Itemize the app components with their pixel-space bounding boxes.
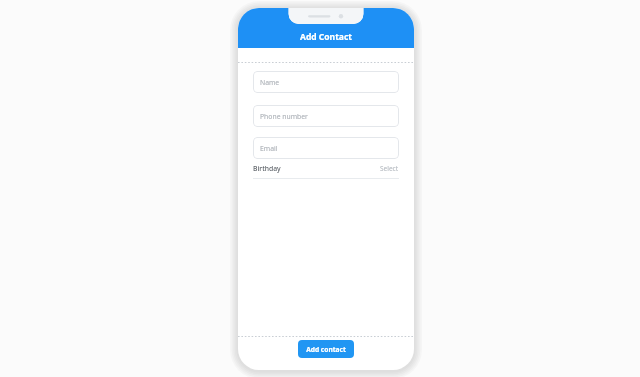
staticText: Birthday <box>253 164 281 173</box>
staticText: Add contact <box>306 345 346 354</box>
button[interactable]: Email <box>253 137 399 159</box>
staticText: Email <box>260 144 278 153</box>
button[interactable]: Phone number <box>253 105 399 127</box>
staticText: Phone number <box>260 112 308 121</box>
button[interactable]: Name <box>253 71 399 93</box>
staticText: Select <box>380 164 399 173</box>
button[interactable]: Birthday <box>253 159 399 178</box>
staticText: Add Contact <box>300 31 352 43</box>
staticText: Name <box>260 78 280 87</box>
button[interactable]: Add contact <box>298 340 354 358</box>
